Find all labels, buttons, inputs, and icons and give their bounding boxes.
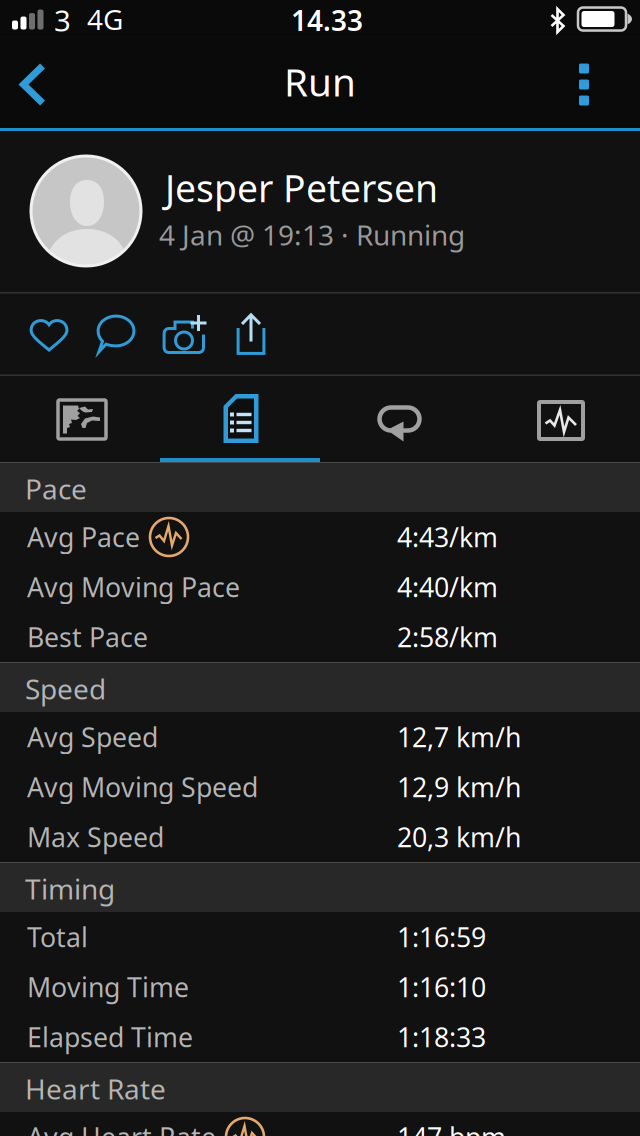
- button[interactable]: Back: [2, 38, 64, 131]
- staticText: Moving Time: [27, 969, 189, 1005]
- staticText: Total: [27, 919, 88, 955]
- staticText: Best Pace: [27, 619, 148, 655]
- button[interactable]: More options: [553, 38, 615, 131]
- button[interactable]: Comment: [82, 292, 150, 376]
- staticText: Heart Rate: [25, 1070, 166, 1107]
- button[interactable]: Best Pace: [0, 612, 640, 662]
- staticText: 12,7 km/h: [397, 719, 521, 755]
- button[interactable]: Moving Time: [0, 962, 640, 1012]
- button[interactable]: Avg Pace: [0, 512, 640, 562]
- staticText: 2:58/km: [397, 619, 498, 655]
- staticText: 1:16:59: [397, 919, 486, 955]
- button[interactable]: Avg Speed: [0, 712, 640, 762]
- button[interactable]: Max Speed: [0, 812, 640, 862]
- staticText: 4:40/km: [397, 569, 498, 605]
- staticText: Speed: [25, 670, 106, 707]
- staticText: 20,3 km/h: [397, 819, 521, 855]
- staticText: Avg Moving Pace: [27, 569, 240, 605]
- button[interactable]: Details: [160, 376, 320, 463]
- staticText: Avg Pace: [27, 519, 140, 555]
- staticText: Avg Heart Rate: [27, 1119, 216, 1136]
- staticText: Timing: [25, 870, 115, 907]
- button[interactable]: Map: [0, 376, 160, 463]
- staticText: 3: [54, 0, 71, 39]
- staticText: 1:16:10: [397, 969, 486, 1005]
- staticText: Jesper Petersen: [165, 163, 438, 213]
- staticText: Avg Speed: [27, 719, 158, 755]
- button[interactable]: Avg Moving Pace: [0, 562, 640, 612]
- staticText: Avg Moving Speed: [27, 769, 258, 805]
- staticText: 4G: [87, 0, 123, 38]
- staticText: Max Speed: [27, 819, 164, 855]
- staticText: 147 bpm: [397, 1119, 506, 1136]
- button[interactable]: Avg Heart Rate: [0, 1112, 640, 1136]
- button[interactable]: Total: [0, 912, 640, 962]
- button[interactable]: Charts: [480, 376, 640, 463]
- staticText: Run: [284, 56, 356, 107]
- button[interactable]: Add photo: [151, 292, 219, 376]
- staticText: Pace: [25, 470, 87, 507]
- staticText: 1:18:33: [397, 1019, 486, 1055]
- button[interactable]: Like: [15, 292, 83, 376]
- button[interactable]: Avg Moving Speed: [0, 762, 640, 812]
- button[interactable]: Elapsed Time: [0, 1012, 640, 1062]
- button[interactable]: Share: [221, 292, 281, 376]
- staticText: 4 Jan @ 19:13 · Running: [159, 216, 465, 253]
- staticText: 4:43/km: [397, 519, 498, 555]
- staticText: 14.33: [291, 1, 363, 39]
- staticText: Elapsed Time: [27, 1019, 193, 1055]
- staticText: 12,9 km/h: [397, 769, 521, 805]
- button[interactable]: Laps: [320, 376, 480, 463]
